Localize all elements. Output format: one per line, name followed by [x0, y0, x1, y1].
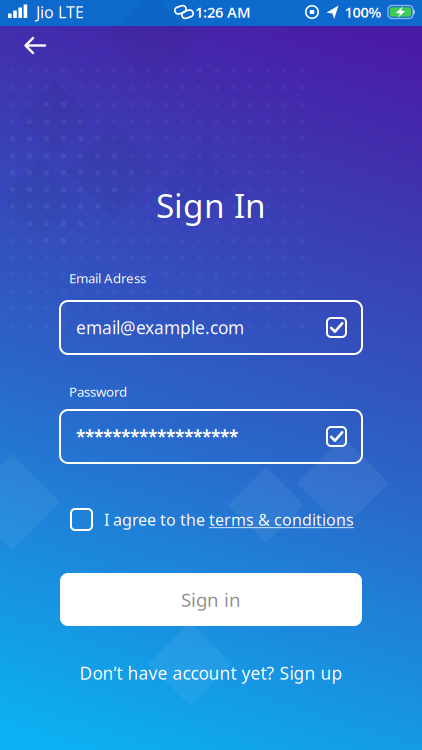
staticText: 1:26 AM [195, 2, 251, 22]
button[interactable]: email@example.com [60, 301, 362, 354]
staticText: email@example.com [76, 316, 244, 339]
staticText: Sign in [181, 587, 241, 612]
button[interactable]: I agree to the terms & conditions [71, 509, 92, 530]
button[interactable]: Sign in [60, 573, 362, 626]
staticText: 100% [344, 2, 381, 22]
button[interactable]: Don’t have account yet? Sign up [79, 661, 342, 684]
staticText: I agree to the terms & conditions [104, 509, 354, 530]
staticText: Don’t have account yet? Sign up [79, 661, 342, 684]
button[interactable]: Back [24, 37, 46, 53]
button[interactable]: I agree to the terms & conditions [104, 509, 354, 530]
button[interactable]: Password is valid [327, 427, 346, 446]
staticText: Password [69, 383, 127, 400]
staticText: ****************** [76, 425, 238, 448]
staticText: Jio LTE [36, 1, 84, 23]
button[interactable]: ****************** [60, 410, 362, 463]
staticText: Email Adress [69, 269, 146, 287]
staticText: Sign In [156, 183, 266, 227]
button[interactable]: Email address is valid [327, 318, 346, 337]
